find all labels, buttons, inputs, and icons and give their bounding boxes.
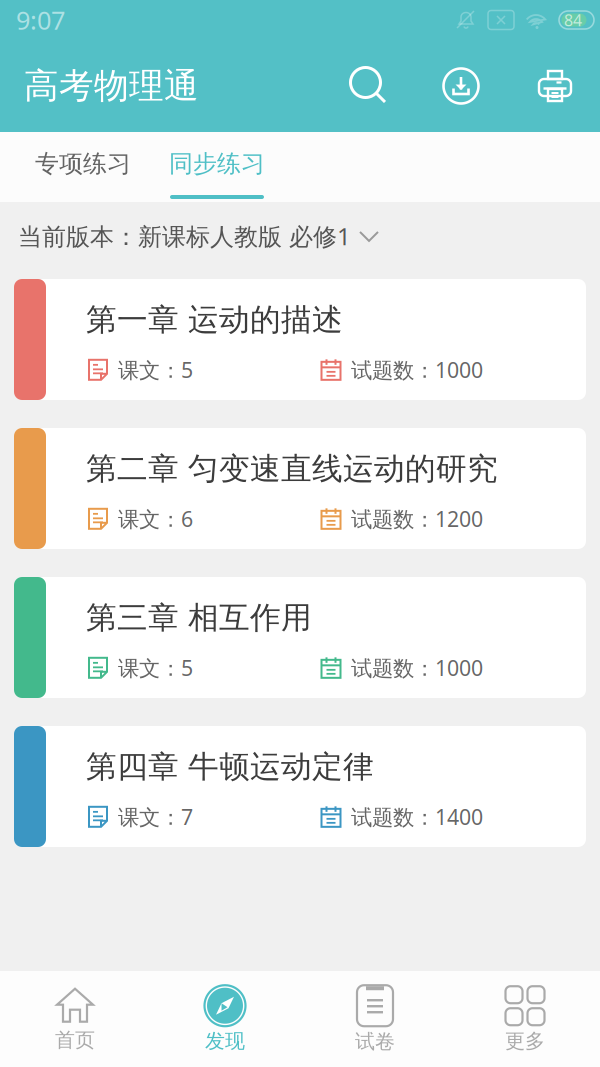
- staticText: 更多: [505, 1029, 545, 1053]
- button[interactable]: 发现: [150, 971, 300, 1067]
- staticText: 课文：5: [118, 654, 193, 682]
- staticText: 课文：6: [118, 505, 193, 533]
- staticText: 当前版本：新课标人教版 必修1: [18, 220, 351, 252]
- staticText: 试题数：1200: [351, 505, 483, 533]
- button[interactable]: 试卷: [300, 971, 450, 1067]
- staticText: 同步练习: [169, 149, 265, 178]
- staticText: 课文：5: [118, 356, 193, 384]
- staticText: 专项练习: [35, 149, 131, 178]
- button[interactable]: 当前版本：新课标人教版 必修1: [0, 202, 600, 279]
- button[interactable]: 专项练习: [36, 132, 130, 202]
- staticText: 试题数：1400: [351, 803, 483, 831]
- staticText: 试卷: [355, 1029, 395, 1054]
- staticText: 试题数：1000: [351, 356, 483, 384]
- staticText: 84: [564, 9, 582, 31]
- button[interactable]: 首页: [0, 971, 150, 1067]
- staticText: 9:07: [16, 3, 65, 37]
- staticText: 高考物理通: [24, 65, 199, 107]
- staticText: 第二章 匀变速直线运动的研究: [86, 450, 498, 488]
- staticText: 第四章 牛顿运动定律: [86, 748, 374, 786]
- button[interactable]: 更多: [450, 971, 600, 1067]
- button[interactable]: 打印: [536, 67, 574, 105]
- staticText: 发现: [205, 1029, 245, 1053]
- staticText: 首页: [55, 1028, 95, 1052]
- button[interactable]: 同步练习: [170, 132, 264, 202]
- staticText: 试题数：1000: [351, 654, 483, 682]
- button[interactable]: 第二章 匀变速直线运动的研究: [14, 428, 586, 549]
- button[interactable]: 第一章 运动的描述: [14, 279, 586, 400]
- button[interactable]: 第四章 牛顿运动定律: [14, 726, 586, 847]
- button[interactable]: 下载: [442, 67, 480, 105]
- button[interactable]: 第三章 相互作用: [14, 577, 586, 698]
- staticText: 第三章 相互作用: [86, 599, 312, 637]
- staticText: 课文：7: [118, 803, 193, 831]
- button[interactable]: 搜索: [350, 67, 388, 105]
- staticText: 第一章 运动的描述: [86, 301, 343, 339]
